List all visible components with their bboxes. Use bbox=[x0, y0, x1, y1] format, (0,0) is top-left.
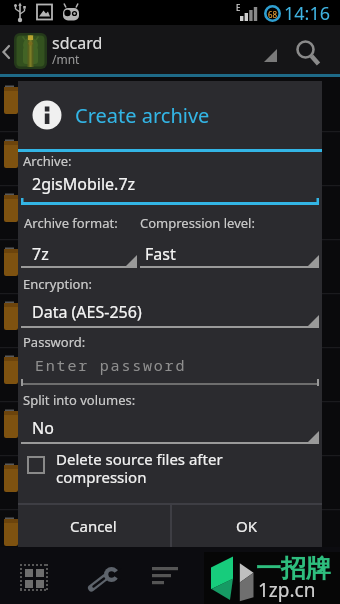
staticText: OK bbox=[236, 516, 258, 536]
button[interactable] bbox=[150, 563, 186, 591]
button[interactable] bbox=[290, 35, 324, 69]
staticText: sdcard bbox=[52, 32, 103, 54]
staticText: 一招牌 bbox=[256, 553, 331, 584]
button[interactable]: No bbox=[21, 412, 319, 444]
staticText: Data (AES-256) bbox=[32, 301, 142, 323]
staticText: E bbox=[236, 2, 241, 13]
staticText: 7z bbox=[32, 243, 49, 265]
staticText: Cancel bbox=[70, 516, 117, 536]
staticText: 2gisMobile.7z bbox=[32, 173, 136, 195]
staticText: Split into volumes: bbox=[23, 391, 136, 409]
staticText: Password: bbox=[23, 333, 86, 351]
staticText: 1zp.cn bbox=[258, 577, 316, 603]
staticText: Archive format: bbox=[24, 214, 118, 232]
button[interactable]: 7z bbox=[21, 236, 137, 268]
staticText: Compression level: bbox=[140, 214, 255, 232]
button[interactable]: Cancel bbox=[18, 505, 169, 547]
button[interactable]: OK bbox=[171, 505, 322, 547]
button[interactable] bbox=[0, 39, 13, 65]
button[interactable] bbox=[88, 560, 124, 596]
staticText: /mnt bbox=[52, 51, 80, 67]
staticText: Archive: bbox=[23, 152, 72, 170]
button[interactable]: Fast bbox=[140, 236, 319, 268]
staticText: Create archive bbox=[75, 102, 210, 129]
staticText: No bbox=[32, 417, 54, 439]
staticText: Encryption: bbox=[23, 275, 92, 293]
staticText: 68 bbox=[268, 9, 278, 20]
button[interactable]: Delete source files after bbox=[21, 449, 319, 491]
staticText: 14:16 bbox=[284, 1, 331, 26]
button[interactable] bbox=[17, 562, 51, 594]
staticText: compression bbox=[56, 467, 147, 487]
staticText: Delete source files after bbox=[56, 449, 223, 469]
staticText: Enter password bbox=[35, 355, 187, 375]
button[interactable]: Data (AES-256) bbox=[21, 296, 319, 328]
staticText: Fast bbox=[145, 243, 176, 265]
button[interactable]: 2gisMobile.7z bbox=[23, 171, 317, 199]
button[interactable]: Enter password bbox=[23, 353, 317, 379]
